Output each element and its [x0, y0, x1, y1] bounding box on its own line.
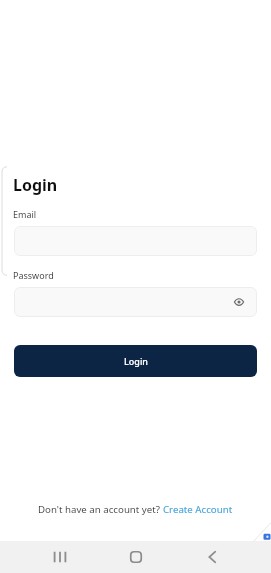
button[interactable] — [14, 226, 257, 256]
staticText: Login — [13, 174, 58, 196]
staticText: Email — [13, 208, 37, 220]
button[interactable]: Login — [14, 345, 257, 377]
button[interactable]: Recents — [43, 541, 77, 573]
button[interactable]: Home — [119, 541, 153, 573]
staticText: Password — [13, 269, 54, 281]
staticText: Login — [124, 355, 148, 367]
staticText: Don't have an account yet? — [38, 503, 163, 516]
button[interactable]: Show password — [228, 291, 250, 313]
button[interactable]: Show password — [14, 287, 257, 317]
button[interactable]: Back — [194, 541, 228, 573]
staticText: Create Account — [163, 503, 233, 516]
button[interactable]: Create Account — [163, 503, 233, 516]
